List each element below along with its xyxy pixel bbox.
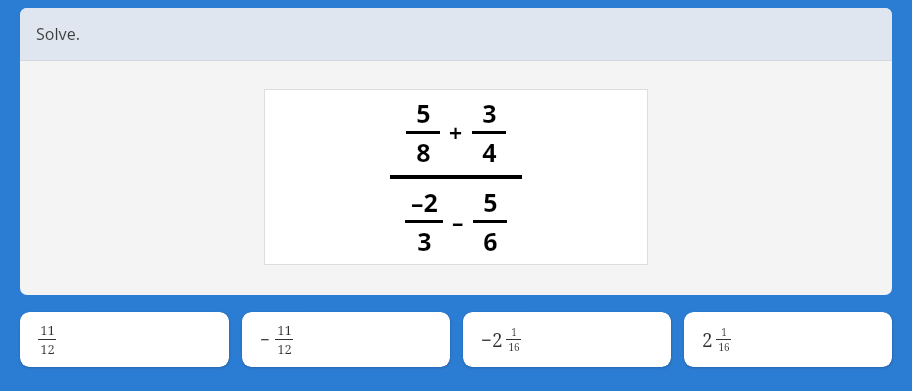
staticText: 12 [277, 340, 292, 358]
staticText: 16 [508, 340, 520, 354]
staticText: 16 [718, 340, 730, 354]
staticText: 3 [482, 96, 497, 130]
staticText: + [449, 117, 463, 148]
staticText: Solve. [36, 23, 81, 45]
staticText: 12 [40, 340, 55, 358]
staticText: 1 [721, 325, 727, 339]
staticText: 6 [483, 224, 498, 258]
staticText: 5 [416, 96, 431, 130]
button[interactable]: − [242, 312, 450, 367]
staticText: 4 [482, 135, 497, 169]
button[interactable]: −2 [463, 312, 671, 367]
staticText: −2 [481, 327, 503, 353]
staticText: 2 [702, 327, 713, 353]
staticText: 1 [511, 325, 517, 339]
staticText: 11 [40, 321, 55, 339]
staticText: 5 [483, 185, 498, 219]
staticText: – [452, 206, 464, 237]
staticText: 8 [416, 135, 431, 169]
staticText: − [260, 328, 270, 351]
staticText: 3 [417, 224, 432, 258]
button[interactable]: 2 [684, 312, 892, 367]
button[interactable]: 11 [20, 312, 229, 367]
staticText: –2 [411, 185, 438, 219]
staticText: 11 [277, 321, 292, 339]
